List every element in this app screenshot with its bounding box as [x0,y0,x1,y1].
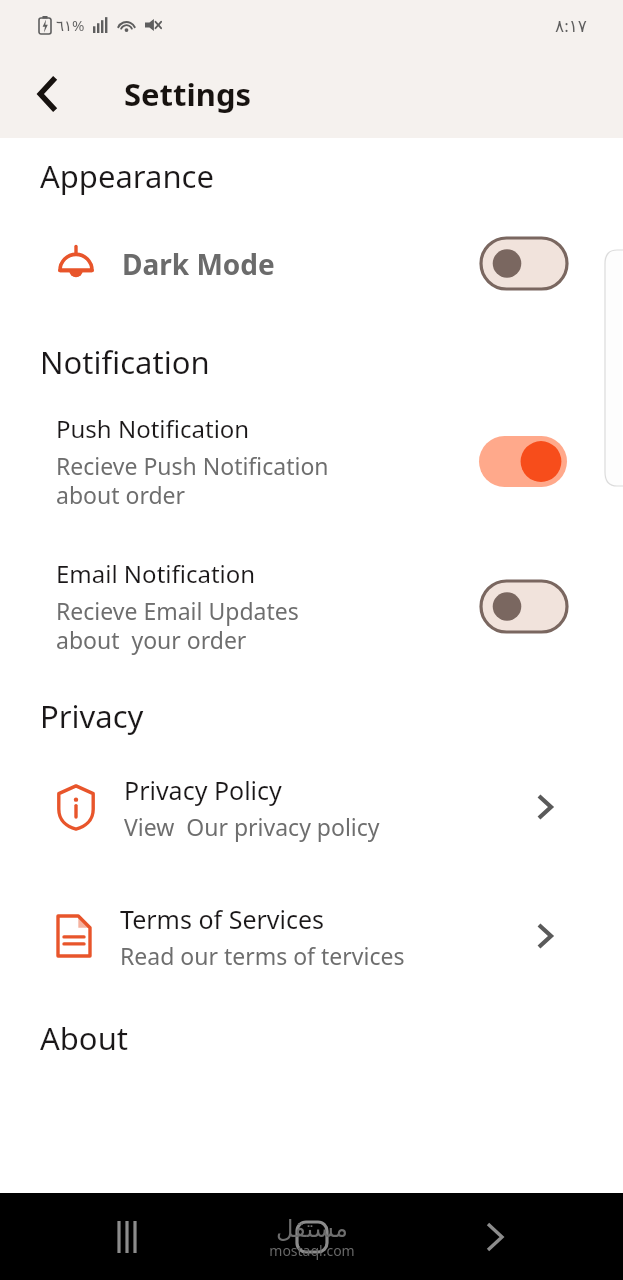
button[interactable]: Open [523,914,567,958]
button[interactable]: Toggle off [481,581,567,632]
staticText: Push Notification [56,412,250,445]
staticText: Notification [40,341,210,383]
button[interactable]: Toggle off [481,238,567,289]
button[interactable]: Terms of Services [30,882,593,990]
staticText: Appearance [40,155,214,197]
button[interactable]: Open [523,785,567,829]
button[interactable]: Privacy Policy [30,753,593,861]
staticText: Recieve Email Updates about your order [56,595,299,656]
button[interactable]: Back [467,1209,523,1265]
button[interactable]: Back [22,68,74,120]
staticText: mostaql.com [269,1241,355,1260]
staticText: مستقل [276,1215,348,1243]
button[interactable]: Toggle on [479,436,567,487]
staticText: Privacy [40,695,144,737]
staticText: ٨:١٧ [555,14,587,37]
staticText: Email Notification [56,557,256,590]
button[interactable]: Email Notification [30,544,593,668]
staticText: Privacy Policy [124,773,282,807]
staticText: Read our terms of tervices [120,940,405,971]
button[interactable]: Recent apps [100,1209,156,1265]
button[interactable]: Home [282,1207,342,1267]
button[interactable]: Dark Mode [30,211,593,316]
button[interactable]: Push Notification [30,399,593,523]
staticText: About [40,1017,128,1059]
staticText: Dark Mode [122,245,275,283]
staticText: View Our privacy policy [124,811,380,842]
staticText: ٦١% [56,15,85,35]
staticText: Settings [124,73,252,115]
staticText: Recieve Push Notification about order [56,450,329,511]
staticText: Terms of Services [120,902,325,936]
